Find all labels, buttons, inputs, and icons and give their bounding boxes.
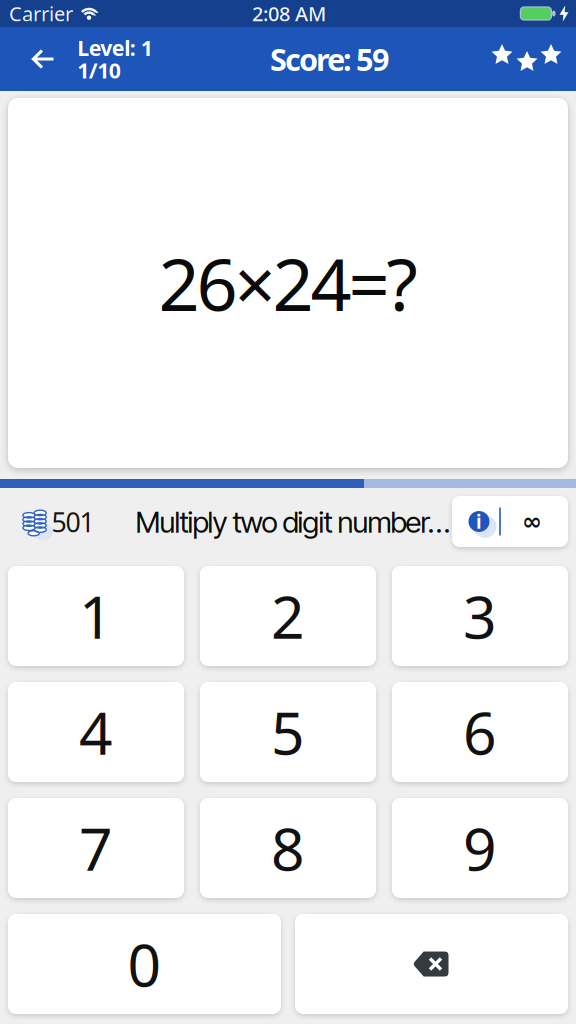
- button[interactable]: 1: [8, 566, 184, 666]
- button[interactable]: 9: [392, 798, 568, 898]
- staticText: 2:08 AM: [252, 0, 326, 27]
- button[interactable]: 3: [392, 566, 568, 666]
- button[interactable]: 5: [200, 682, 376, 782]
- staticText: 3: [463, 577, 497, 655]
- staticText: 4: [79, 693, 113, 771]
- staticText: 1/10: [77, 56, 121, 84]
- staticText: 501: [51, 504, 94, 540]
- button[interactable]: 7: [8, 798, 184, 898]
- button[interactable]: 6: [392, 682, 568, 782]
- button[interactable]: Info: [458, 496, 500, 547]
- button[interactable]: 4: [8, 682, 184, 782]
- button[interactable]: Delete: [295, 914, 568, 1014]
- staticText: Multiply two digit number…: [135, 504, 450, 540]
- button[interactable]: 8: [200, 798, 376, 898]
- staticText: Score: 59: [270, 39, 390, 79]
- button[interactable]: 2: [200, 566, 376, 666]
- staticText: 6: [463, 693, 497, 771]
- staticText: i: [476, 509, 482, 534]
- button[interactable]: Back: [20, 37, 65, 80]
- staticText: ∞: [522, 508, 542, 535]
- button[interactable]: Unlimited: [506, 496, 558, 547]
- staticText: 9: [463, 809, 497, 887]
- staticText: 5: [271, 693, 305, 771]
- button[interactable]: 0: [8, 914, 281, 1014]
- staticText: Level: 1: [77, 34, 153, 62]
- staticText: 2: [271, 577, 305, 655]
- staticText: 26×24=?: [158, 235, 417, 331]
- staticText: 8: [271, 809, 305, 887]
- staticText: 0: [127, 925, 161, 1003]
- staticText: 1: [79, 577, 113, 655]
- staticText: 7: [79, 809, 113, 887]
- staticText: Carrier: [9, 0, 73, 27]
